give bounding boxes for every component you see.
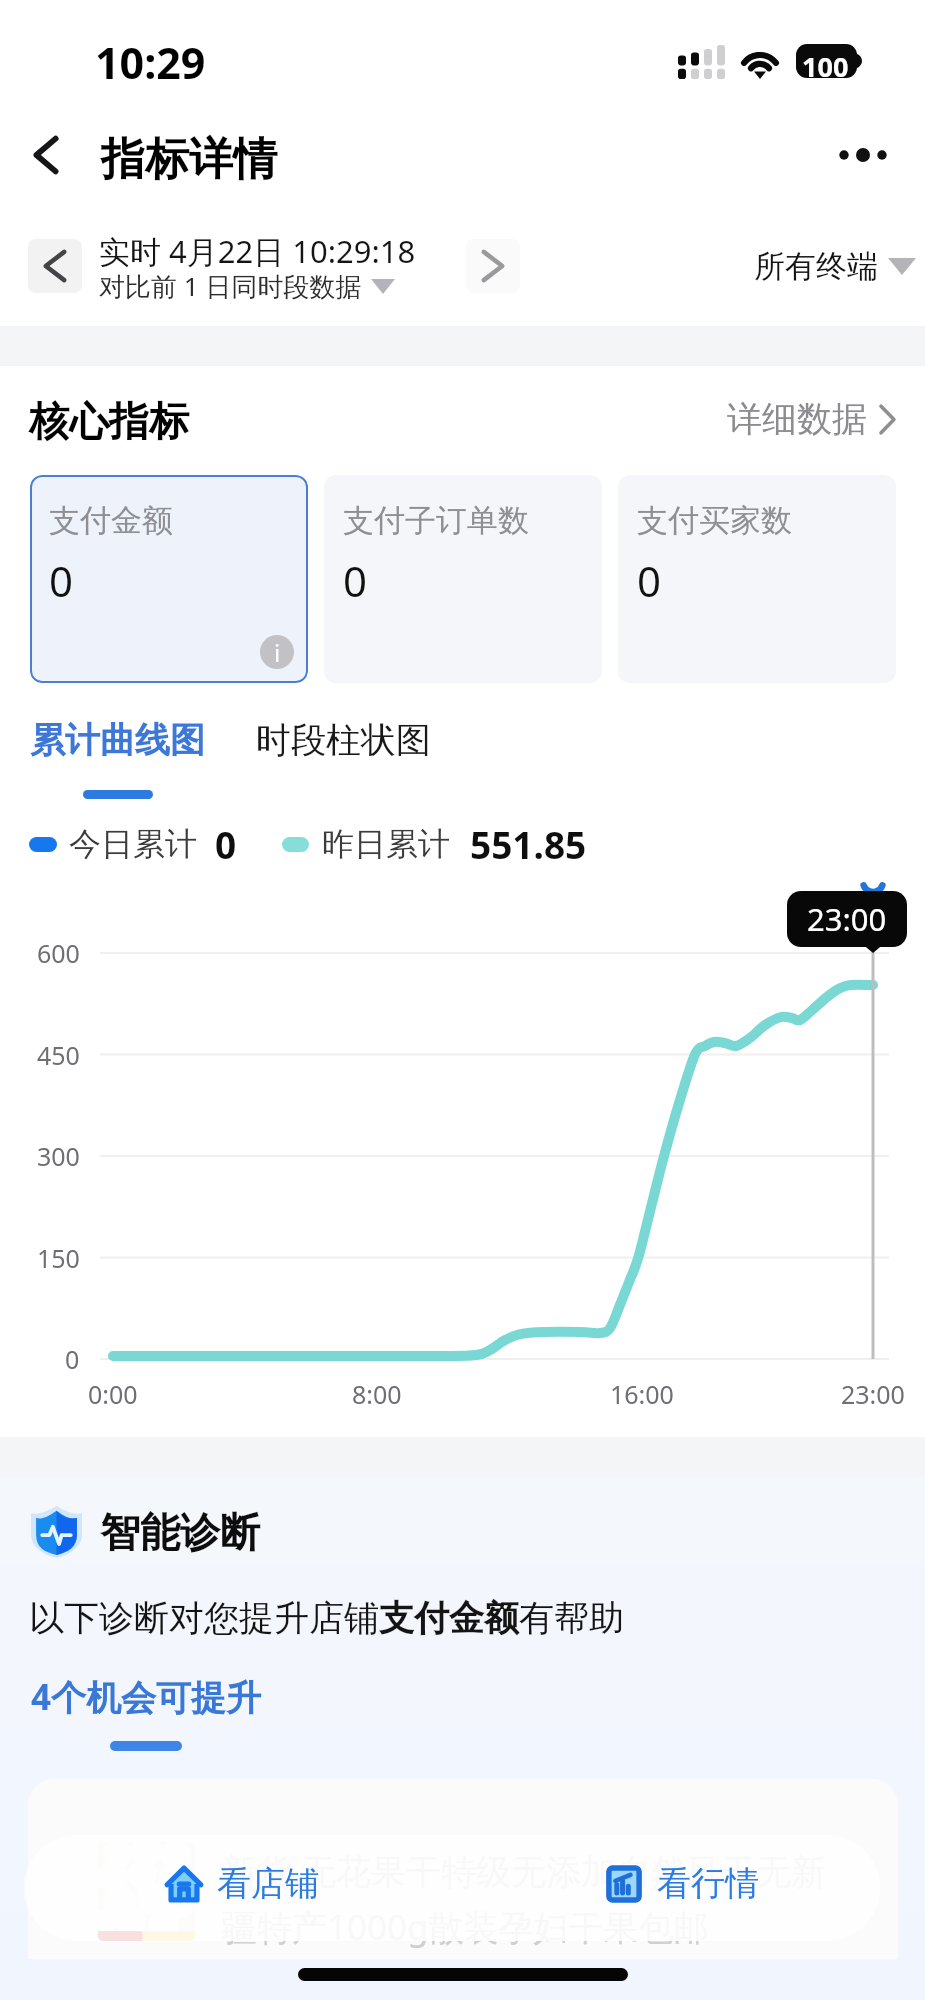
staticText: 指标详情 [101,132,277,187]
staticText: 核心指标 [29,396,189,446]
button[interactable]: Next period [466,239,520,293]
staticText: 10:29 [95,33,206,92]
button[interactable]: 支付金额 [30,475,308,683]
button[interactable]: Back [13,122,79,188]
staticText: 23:00 [841,1377,905,1411]
staticText: 0 [65,1342,80,1376]
button[interactable]: 累计曲线图 [30,718,205,762]
button[interactable]: 看行情 [606,1862,759,1905]
button[interactable]: 支付子订单数 [324,475,602,683]
staticText: 新货 无花果干特级无添加自然风干无新 [222,1847,827,1895]
staticText: 累计曲线图 [30,718,205,762]
staticText: 支付子订单数 [343,501,529,540]
button[interactable]: 详细数据 [727,397,896,441]
button[interactable]: 看店铺 [166,1862,319,1905]
button[interactable]: 支付买家数 [618,475,896,683]
staticText: 150 [37,1241,80,1275]
staticText: 8:00 [352,1377,402,1411]
staticText: 0 [215,819,237,869]
staticText: 时段柱状图 [256,718,431,762]
staticText: 0 [637,552,662,609]
staticText: 0 [343,552,368,609]
staticText: 551.85 [470,819,587,869]
staticText: 0:00 [88,1377,138,1411]
staticText: 昨日累计 [322,824,450,864]
staticText: 支付买家数 [637,501,792,540]
staticText: 16:00 [610,1377,674,1411]
staticText: 所有终端 [754,247,878,286]
staticText: 今日累计 [69,824,197,864]
staticText: 23:00 [807,898,887,940]
staticText: 详细数据 [727,397,867,441]
staticText: 以下诊断对您提升店铺支付金额有帮助 [29,1596,624,1640]
staticText: 450 [37,1038,80,1072]
button[interactable]: 所有终端 [754,247,916,286]
staticText: 100 [802,48,849,85]
staticText: 智能诊断 [100,1507,260,1557]
staticText: 疆特产1000g散装孕妇干果包邮 [222,1903,709,1951]
staticText: i [274,636,281,669]
staticText: 看行情 [657,1862,759,1905]
staticText: 300 [37,1139,80,1173]
button[interactable]: 时段柱状图 [256,718,431,762]
button[interactable]: Previous period [28,239,82,293]
staticText: 支付金额 [49,501,173,540]
button[interactable]: More options [831,117,907,193]
button[interactable]: 对比前 1 日同时段数据 [99,268,395,304]
staticText: 对比前 1 日同时段数据 [99,268,362,304]
button[interactable]: 4个机会可提升 [31,1673,262,1721]
staticText: 实时 4月22日 10:29:18 [99,230,416,272]
staticText: 600 [37,936,80,970]
staticText: 0 [49,552,74,609]
staticText: 看店铺 [217,1862,319,1905]
